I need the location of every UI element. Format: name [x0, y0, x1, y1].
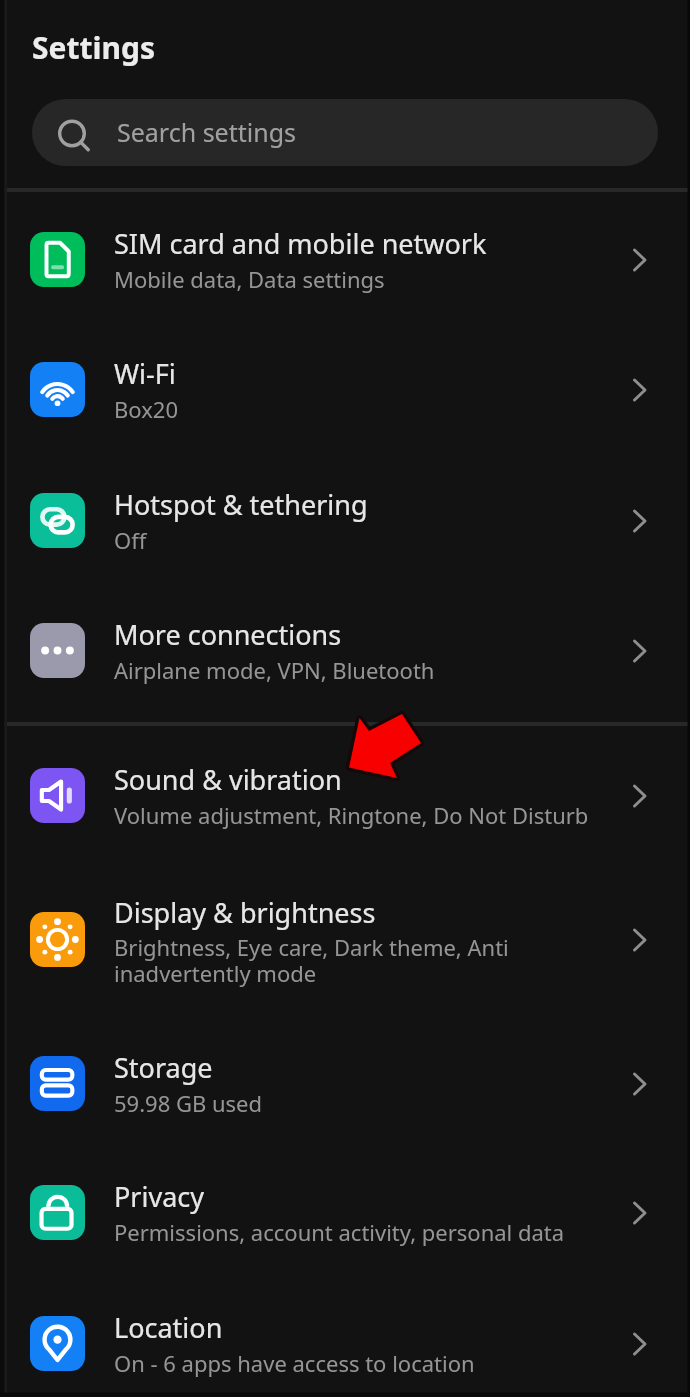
other: Open [632, 375, 660, 403]
button[interactable]: Display & brightness [0, 868, 690, 1012]
staticText: Display & brightness [114, 894, 376, 931]
staticText: Settings [32, 27, 155, 68]
staticText: Storage [114, 1049, 213, 1086]
staticText: Search settings [117, 115, 297, 149]
other: Open [632, 1329, 660, 1357]
button[interactable]: Privacy [0, 1148, 690, 1278]
staticText: On - 6 apps have access to location [114, 1348, 475, 1378]
button[interactable]: Storage [0, 1019, 690, 1149]
staticText: Box20 [114, 394, 178, 424]
staticText: Hotspot & tethering [114, 486, 368, 523]
other: Open [632, 636, 660, 664]
staticText: Privacy [114, 1178, 205, 1215]
other: Open [632, 245, 660, 273]
staticText: Volume adjustment, Ringtone, Do Not Dist… [114, 800, 589, 830]
staticText: Location [114, 1309, 223, 1346]
button[interactable]: SIM card and mobile network [0, 195, 690, 325]
button[interactable]: Sound & vibration [0, 731, 690, 861]
other: Open [632, 1069, 660, 1097]
staticText: Brightness, Eye care, Dark theme, Anti [114, 932, 509, 962]
staticText: Sound & vibration [114, 761, 342, 798]
staticText: inadvertently mode [114, 958, 317, 988]
staticText: Mobile data, Data settings [114, 264, 385, 294]
button[interactable]: Location [0, 1279, 690, 1397]
other: Open [632, 506, 660, 534]
staticText: Wi-Fi [114, 355, 176, 392]
button[interactable]: Wi-Fi [0, 325, 690, 455]
staticText: 59.98 GB used [114, 1088, 263, 1118]
staticText: SIM card and mobile network [114, 225, 487, 262]
button[interactable]: Hotspot & tethering [0, 456, 690, 586]
staticText: Off [114, 525, 147, 555]
other: Open [632, 925, 660, 953]
other: Open [632, 781, 660, 809]
staticText: Airplane mode, VPN, Bluetooth [114, 655, 435, 685]
button[interactable]: Search settings [32, 99, 658, 166]
other: Open [632, 1198, 660, 1226]
staticText: More connections [114, 616, 342, 653]
button[interactable]: More connections [0, 586, 690, 716]
staticText: Permissions, account activity, personal … [114, 1217, 565, 1247]
